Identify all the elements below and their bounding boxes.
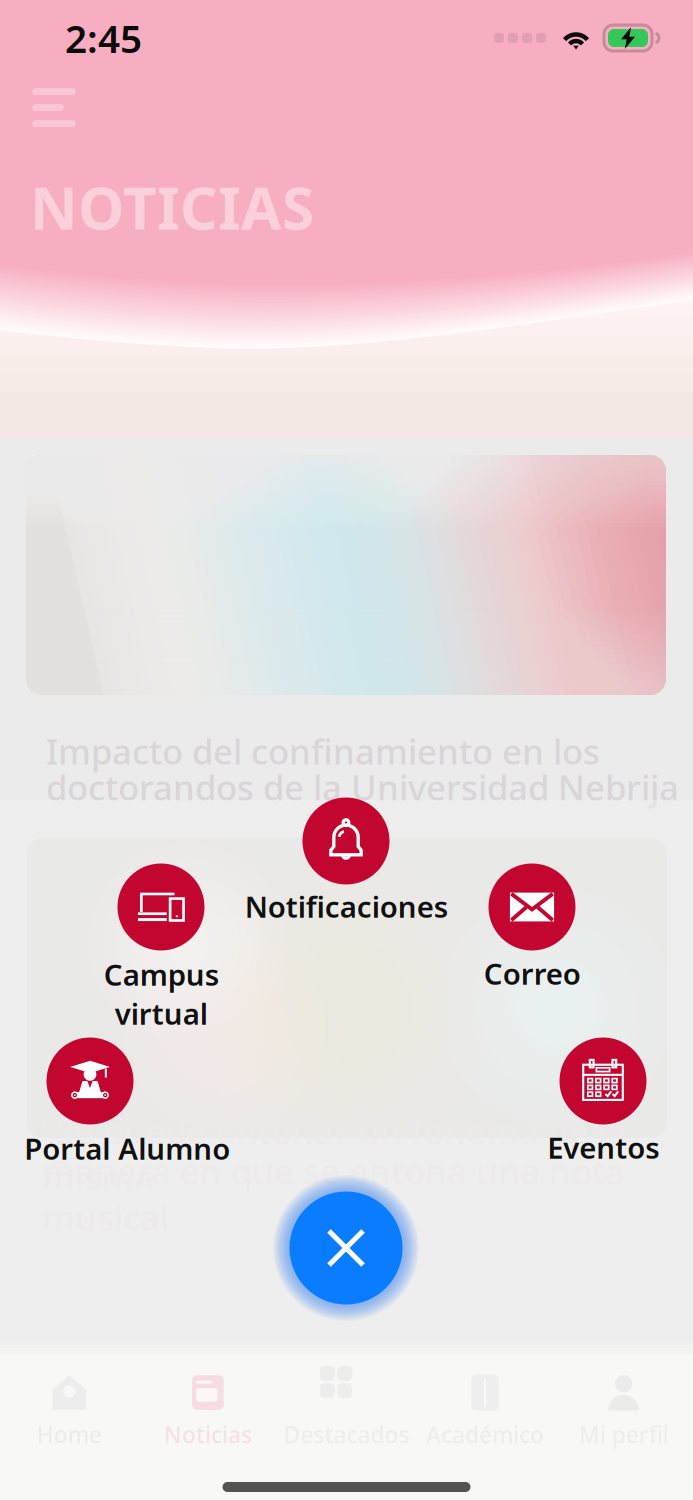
staticText: Portal Alumno: [24, 1129, 230, 1168]
staticText: Académico: [426, 1419, 544, 1449]
button[interactable]: Mi perfil: [554, 1374, 693, 1449]
button[interactable]: Eventos: [0, 0, 693, 1500]
staticText: Mi perfil: [579, 1419, 669, 1449]
staticText: Correo: [483, 954, 580, 993]
button[interactable]: Noticias: [139, 1374, 277, 1449]
staticText: NOTICIAS: [30, 168, 314, 246]
staticText: Impacto del confinamiento en los: [46, 728, 600, 774]
button[interactable]: Destacados: [277, 1374, 416, 1449]
staticText: 2:45: [65, 12, 142, 64]
button[interactable]: Correo: [0, 0, 693, 1500]
staticText: “Se puede entonar un fonema de la misma: [42, 1108, 627, 1200]
staticText: Destacados: [283, 1419, 409, 1449]
staticText: Campus virtual: [103, 955, 218, 1033]
button[interactable]: Portal Alumno: [0, 0, 693, 1500]
staticText: manera en que se entona una nota musical: [42, 1148, 625, 1240]
staticText: Notificaciones: [244, 887, 447, 926]
staticText: Noticias: [164, 1419, 252, 1449]
button[interactable]: Notificaciones: [0, 0, 693, 1500]
button[interactable]: Home: [0, 1374, 139, 1449]
button[interactable]: Académico: [416, 1374, 554, 1449]
staticText: doctorandos de la Universidad Nebrija: [46, 764, 679, 810]
staticText: Home: [37, 1419, 102, 1449]
button[interactable]: Campus virtual: [0, 0, 693, 1500]
button[interactable]: Close menu: [289, 1191, 402, 1304]
staticText: Eventos: [547, 1128, 659, 1167]
